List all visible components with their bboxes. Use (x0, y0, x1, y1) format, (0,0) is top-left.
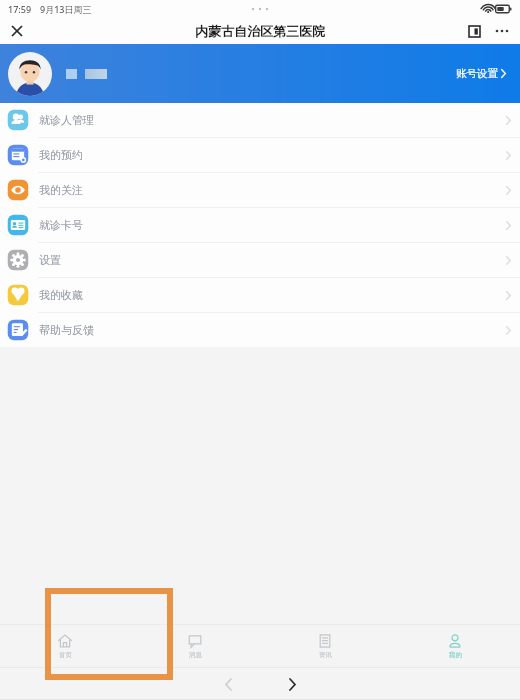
staticText: 我的 (449, 651, 462, 659)
staticText: 我的收藏 (39, 288, 83, 302)
button[interactable]: 我的关注 (0, 173, 520, 207)
staticText: 9月13日周三 (40, 3, 92, 15)
button[interactable]: 首页 (0, 624, 130, 668)
button[interactable]: 就诊人管理 (0, 103, 520, 137)
staticText: 内蒙古自治区第三医院 (195, 23, 325, 39)
button[interactable]: 消息 (130, 624, 260, 668)
staticText: 就诊卡号 (39, 218, 83, 232)
button[interactable]: Forward (270, 670, 314, 698)
staticText: 17:59 (8, 3, 32, 15)
button[interactable]: 我的 (390, 624, 520, 668)
staticText: 首页 (59, 651, 72, 659)
button[interactable]: 帮助与反馈 (0, 313, 520, 347)
button[interactable]: 资讯 (260, 624, 390, 668)
button[interactable]: 就诊卡号 (0, 208, 520, 242)
button[interactable]: Reader mode (463, 20, 485, 42)
button[interactable]: 我的收藏 (0, 278, 520, 312)
button[interactable]: 我的预约 (0, 138, 520, 172)
staticText: 我的关注 (39, 183, 83, 197)
staticText: 设置 (39, 253, 61, 267)
staticText: 消息 (189, 651, 202, 659)
staticText: 就诊人管理 (39, 113, 94, 127)
staticText: 我的预约 (39, 148, 83, 162)
button[interactable]: Profile photo (8, 52, 52, 96)
button[interactable]: Close (0, 18, 34, 44)
button[interactable]: Back (206, 670, 250, 698)
button[interactable]: More options (491, 20, 513, 42)
staticText: 账号设置 (456, 67, 498, 80)
button[interactable]: 设置 (0, 243, 520, 277)
staticText: 资讯 (319, 651, 332, 659)
staticText: 帮助与反馈 (39, 323, 94, 337)
button[interactable]: 账号设置 (452, 63, 510, 84)
